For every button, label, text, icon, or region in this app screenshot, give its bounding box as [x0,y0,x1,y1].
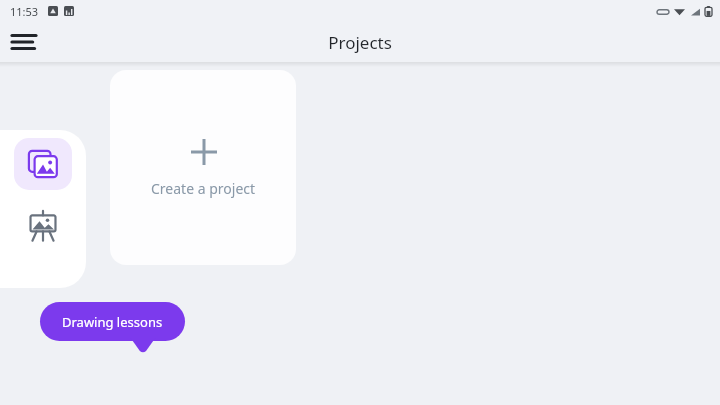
button[interactable]: Open navigation menu [4,22,44,62]
button[interactable]: Lessons [14,200,72,252]
staticText: Drawing lessons [62,313,163,331]
staticText: Create a project [151,179,256,198]
button[interactable]: Create a project [110,70,296,265]
staticText: Projects [328,31,392,54]
button[interactable]: Drawing lessons [40,302,185,352]
staticText: 11:53 [10,4,39,19]
button[interactable]: Gallery [14,138,72,190]
